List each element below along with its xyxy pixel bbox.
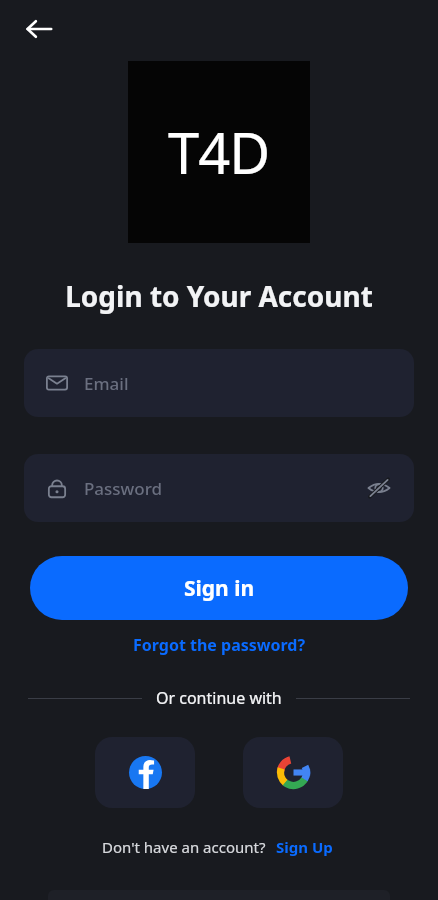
button[interactable]: Continue with Google [243, 737, 343, 808]
staticText: T4D [168, 114, 270, 190]
button[interactable]: Email [24, 349, 414, 417]
staticText: Forgot the password? [133, 634, 306, 656]
button[interactable]: Continue with Facebook [95, 737, 195, 808]
staticText: Sign in [184, 574, 255, 603]
button[interactable]: Forgot the password? [123, 629, 316, 661]
button[interactable]: Sign Up [266, 833, 337, 861]
button[interactable]: Sign in [30, 556, 408, 620]
button[interactable]: Back [18, 8, 60, 50]
staticText: Password [84, 477, 163, 500]
button[interactable]: Show password [362, 471, 396, 505]
staticText: Email [84, 372, 129, 395]
button[interactable]: Password [24, 454, 414, 522]
staticText: Or continue with [156, 687, 282, 709]
staticText: Don't have an account? [102, 837, 266, 857]
staticText: Sign Up [276, 837, 333, 857]
staticText: Login to Your Account [65, 277, 373, 315]
